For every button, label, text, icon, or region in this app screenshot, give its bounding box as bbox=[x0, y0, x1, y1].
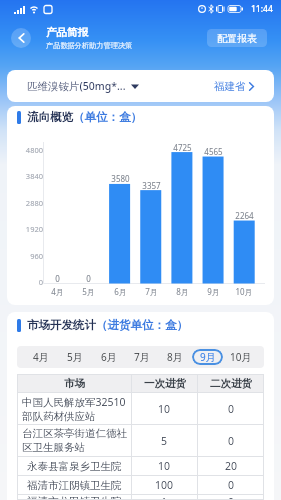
staticText: 福清市龙田镇卫生院 bbox=[27, 495, 122, 500]
staticText: 0 bbox=[86, 273, 91, 284]
staticText: 产品数据分析助力管理决策 bbox=[46, 41, 133, 50]
staticText: 4月 bbox=[51, 286, 64, 297]
staticText: 5 bbox=[161, 434, 168, 448]
staticText: 7月 bbox=[134, 350, 150, 364]
staticText: 100 bbox=[155, 478, 174, 492]
staticText: 永泰县富泉乡卫生院 bbox=[27, 460, 122, 473]
staticText: 6月 bbox=[101, 350, 117, 364]
button[interactable]: 福清市江阴镇卫生院 bbox=[17, 476, 264, 494]
button[interactable]: 6月 bbox=[98, 347, 120, 367]
staticText: 产品简报 bbox=[46, 26, 88, 39]
staticText: 流向概览 bbox=[27, 110, 73, 124]
staticText: 配置报表 bbox=[217, 32, 257, 45]
staticText: 福建省 bbox=[214, 80, 246, 93]
staticText: 中国人民解放军32510 部队药材供应站 bbox=[22, 395, 126, 423]
button[interactable]: 配置报表 bbox=[207, 29, 267, 47]
staticText: 10 bbox=[158, 402, 171, 416]
staticText: 6月 bbox=[114, 286, 127, 297]
staticText: 1 bbox=[161, 495, 168, 500]
staticText: 福清市江阴镇卫生院 bbox=[27, 479, 122, 492]
button[interactable]: 匹维溴铵片(50mg*... bbox=[27, 79, 139, 93]
staticText: 11:44 bbox=[251, 3, 273, 15]
button[interactable]: 10月 bbox=[227, 347, 255, 367]
button[interactable]: 7月 bbox=[131, 347, 153, 367]
staticText: 一次进货 bbox=[144, 377, 186, 390]
staticText: 9月 bbox=[200, 350, 216, 364]
button[interactable]: 台江区茶亭街道仁德社 区卫生服务站 bbox=[17, 425, 264, 456]
staticText: 8月 bbox=[167, 350, 183, 364]
staticText: 20 bbox=[225, 459, 238, 473]
staticText: 2264 bbox=[235, 210, 254, 221]
staticText: 0 bbox=[228, 478, 235, 492]
staticText: 1920 bbox=[25, 224, 43, 234]
staticText: 市场 bbox=[64, 377, 85, 390]
button[interactable]: 福清市龙田镇卫生院 bbox=[17, 495, 264, 500]
button[interactable]: 永泰县富泉乡卫生院 bbox=[17, 457, 264, 475]
staticText: 0 bbox=[55, 273, 60, 284]
staticText: 3357 bbox=[142, 180, 161, 191]
staticText: 台江区茶亭街道仁德社 区卫生服务站 bbox=[22, 427, 127, 454]
staticText: 2880 bbox=[25, 198, 43, 208]
staticText: 5月 bbox=[82, 286, 95, 297]
staticText: 4725 bbox=[173, 142, 192, 153]
staticText: 3840 bbox=[25, 171, 43, 181]
staticText: 10 bbox=[158, 459, 171, 473]
button[interactable]: 5月 bbox=[64, 347, 86, 367]
staticText: 10月 bbox=[235, 286, 253, 297]
staticText: 7月 bbox=[145, 286, 158, 297]
staticText: 0 bbox=[228, 402, 235, 416]
staticText: 0 bbox=[38, 277, 43, 287]
staticText: 匹维溴铵片(50mg*... bbox=[27, 79, 126, 93]
button[interactable]: 9月 bbox=[192, 349, 223, 365]
button[interactable]: 福建省 bbox=[214, 80, 254, 93]
staticText: 10月 bbox=[230, 350, 252, 364]
staticText: 9月 bbox=[207, 286, 220, 297]
staticText: （进货单位：盒） bbox=[96, 318, 188, 332]
button[interactable] bbox=[11, 28, 31, 48]
staticText: （单位：盒） bbox=[73, 110, 142, 124]
staticText: 0 bbox=[228, 434, 235, 448]
staticText: 市场开发统计 bbox=[27, 318, 96, 332]
staticText: 4月 bbox=[33, 350, 49, 364]
button[interactable]: 8月 bbox=[164, 347, 186, 367]
button[interactable]: 4月 bbox=[30, 347, 52, 367]
staticText: 4565 bbox=[204, 146, 223, 157]
staticText: 3580 bbox=[111, 173, 130, 184]
staticText: 二次进货 bbox=[210, 377, 252, 390]
staticText: 960 bbox=[30, 251, 43, 261]
staticText: 0 bbox=[228, 495, 235, 500]
staticText: 5月 bbox=[67, 350, 83, 364]
staticText: 4800 bbox=[25, 145, 43, 155]
staticText: 8月 bbox=[176, 286, 189, 297]
button[interactable]: 中国人民解放军32510 部队药材供应站 bbox=[17, 393, 264, 424]
